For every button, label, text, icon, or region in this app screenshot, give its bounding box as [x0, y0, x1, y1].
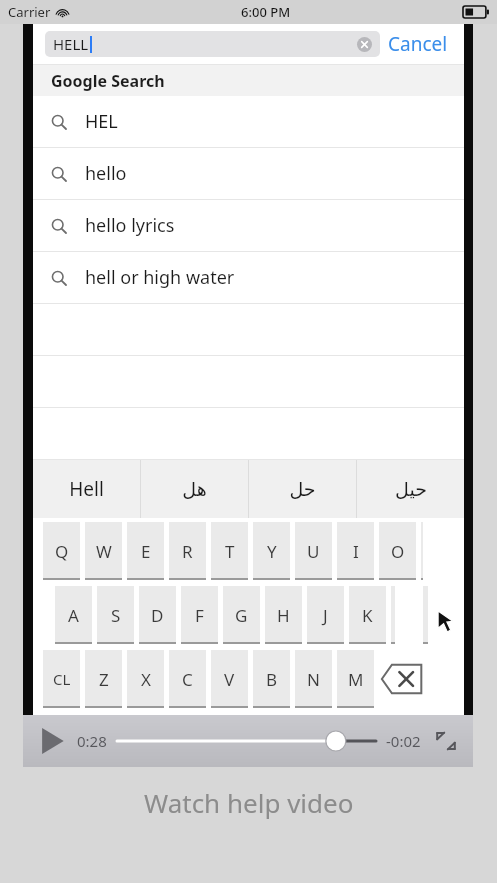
button[interactable]: Seek [117, 730, 376, 752]
button[interactable]: H [265, 586, 302, 644]
staticText: X [141, 668, 151, 691]
staticText: حل [289, 478, 316, 500]
button[interactable]: CL [43, 650, 80, 708]
staticText: D [151, 604, 164, 627]
button[interactable]: L [391, 586, 428, 644]
button[interactable]: J [307, 586, 344, 644]
staticText: M [348, 668, 364, 691]
button[interactable]: Full screen [431, 726, 461, 756]
staticText: 6:00 PM [241, 3, 291, 21]
button[interactable]: هل [141, 460, 248, 518]
button[interactable]: حل [249, 460, 356, 518]
staticText: Watch help video [144, 785, 354, 820]
button[interactable]: G [223, 586, 260, 644]
staticText: U [307, 540, 320, 563]
button[interactable]: F [181, 586, 218, 644]
button[interactable]: Y [253, 522, 290, 580]
button[interactable]: Cancel [380, 27, 456, 61]
staticText: G [235, 604, 248, 627]
staticText: J [323, 604, 328, 627]
button[interactable]: W [85, 522, 122, 580]
button[interactable]: Clear text [357, 37, 372, 52]
staticText: V [224, 668, 235, 691]
staticText: Cancel [388, 31, 448, 57]
button[interactable]: HEL [33, 96, 464, 148]
button[interactable]: Hell [33, 460, 140, 518]
button[interactable]: M [337, 650, 374, 708]
button[interactable]: Z [85, 650, 122, 708]
staticText: K [362, 604, 373, 627]
button[interactable]: حيل [357, 460, 464, 518]
button[interactable]: Q [43, 522, 80, 580]
button[interactable]: hell or high water [33, 252, 464, 304]
staticText: Carrier [8, 3, 51, 21]
staticText: HEL [85, 109, 118, 134]
staticText: hello lyrics [85, 213, 175, 238]
staticText: S [111, 604, 121, 627]
button[interactable]: P [421, 522, 458, 580]
button[interactable]: R [169, 522, 206, 580]
staticText: B [266, 668, 278, 691]
button[interactable]: X [127, 650, 164, 708]
staticText: C [182, 668, 193, 691]
staticText: Google Search [51, 70, 165, 92]
staticText: T [225, 540, 235, 563]
staticText: R [182, 540, 193, 563]
button[interactable]: U [295, 522, 332, 580]
button[interactable]: S [97, 586, 134, 644]
button[interactable]: Backspace [379, 650, 424, 708]
staticText: CL [53, 669, 71, 689]
staticText: F [195, 604, 204, 627]
button[interactable]: hello [33, 148, 464, 200]
staticText: هل [182, 478, 207, 500]
staticText: H [277, 604, 290, 627]
button[interactable]: D [139, 586, 176, 644]
button[interactable]: N [295, 650, 332, 708]
button[interactable]: C [169, 650, 206, 708]
staticText: حيل [395, 478, 427, 500]
staticText: 0:28 [77, 731, 107, 751]
staticText: Y [267, 540, 277, 563]
staticText: A [68, 604, 79, 627]
staticText: W [96, 540, 112, 563]
staticText: hell or high water [85, 265, 235, 290]
button[interactable]: I [337, 522, 374, 580]
button[interactable]: B [253, 650, 290, 708]
button[interactable]: V [211, 650, 248, 708]
staticText: Q [55, 540, 69, 563]
staticText: E [141, 540, 151, 563]
button[interactable]: A [55, 586, 92, 644]
staticText: Hell [69, 476, 104, 502]
button[interactable]: E [127, 522, 164, 580]
button[interactable]: Play [35, 724, 69, 758]
staticText: hello [85, 161, 127, 186]
button[interactable]: O [379, 522, 416, 580]
staticText: I [353, 540, 359, 563]
button[interactable]: HELL [45, 31, 380, 57]
staticText: HELL [53, 34, 89, 54]
staticText: -0:02 [386, 731, 421, 751]
button[interactable]: hello lyrics [33, 200, 464, 252]
button[interactable]: T [211, 522, 248, 580]
staticText: Z [99, 668, 109, 691]
staticText: O [391, 540, 405, 563]
staticText: N [307, 668, 320, 691]
button[interactable]: K [349, 586, 386, 644]
